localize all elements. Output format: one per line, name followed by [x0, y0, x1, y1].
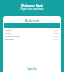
button[interactable]: Email	[3, 32, 61, 35]
staticText: Name	[5, 29, 12, 32]
staticText: Birthday	[5, 38, 14, 41]
staticText: Sign in to continue	[0, 7, 64, 11]
staticText: Email	[5, 32, 11, 35]
staticText: Phone number	[5, 35, 21, 38]
staticText: Welcome Back	[0, 4, 64, 8]
staticText: 0123	[53, 35, 59, 38]
staticText: Jane	[54, 29, 59, 32]
button[interactable]: Name	[3, 29, 61, 32]
button[interactable]: Phone number	[3, 35, 61, 38]
button[interactable]: Sign Up	[3, 67, 61, 71]
staticText: jane	[54, 32, 59, 35]
staticText: My Account	[3, 19, 61, 23]
staticText: 1990	[53, 38, 59, 41]
button[interactable]: Birthday	[3, 38, 61, 41]
